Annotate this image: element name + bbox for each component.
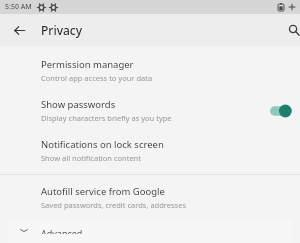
staticText: Notifications on lock screen [41, 138, 164, 151]
button[interactable]: Toggle [270, 103, 292, 119]
button[interactable]: Search [282, 18, 300, 42]
staticText: Privacy [41, 22, 83, 38]
button[interactable]: Notifications on lock screen [0, 131, 300, 171]
staticText: Autofill service from Google [41, 185, 165, 198]
staticText: Saved passwords, credit cards, addresses [41, 200, 186, 210]
staticText: Permission manager [41, 58, 134, 71]
staticText: Display characters briefly as you type [41, 113, 172, 123]
button[interactable]: Permission manager [0, 51, 300, 91]
button[interactable]: Autofill service from Google [0, 178, 300, 218]
button[interactable]: Show passwords [0, 91, 300, 131]
staticText: Show all notification content [41, 153, 141, 163]
button[interactable]: Back [7, 18, 31, 42]
staticText: Advanced [41, 227, 83, 234]
staticText: 5:50 AM [5, 2, 32, 12]
staticText: Show passwords [41, 98, 116, 111]
staticText: Control app access to your data [41, 73, 153, 83]
button[interactable]: Advanced [8, 220, 292, 243]
